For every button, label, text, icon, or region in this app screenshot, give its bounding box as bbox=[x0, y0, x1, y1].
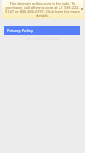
staticText: The domain nullav.com is for sale. To pu… bbox=[5, 1, 80, 18]
button[interactable]: Privacy Policy bbox=[4, 26, 80, 35]
button[interactable]: Close banner bbox=[79, 6, 85, 12]
staticText: Privacy Policy bbox=[7, 28, 34, 33]
